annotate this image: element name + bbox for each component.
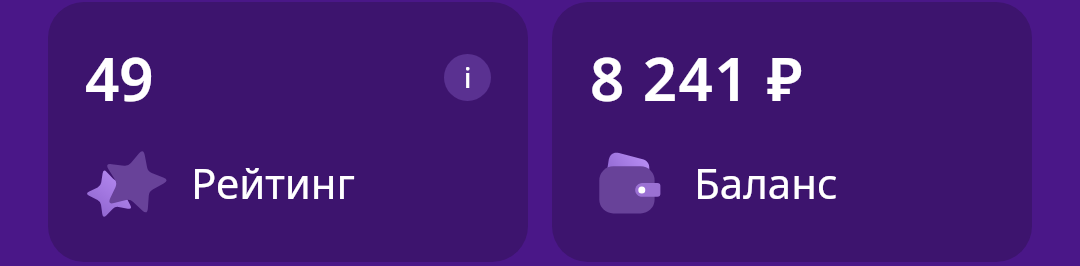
- staticText: 49: [85, 37, 154, 119]
- staticText: Баланс: [694, 154, 838, 211]
- staticText: Рейтинг: [191, 154, 356, 211]
- button[interactable]: Информация о рейтинге: [444, 54, 491, 101]
- staticText: i: [464, 59, 472, 96]
- button[interactable]: 49: [48, 2, 528, 262]
- staticText: 8 241 ₽: [590, 37, 804, 119]
- button[interactable]: 8 241 ₽: [552, 2, 1032, 262]
